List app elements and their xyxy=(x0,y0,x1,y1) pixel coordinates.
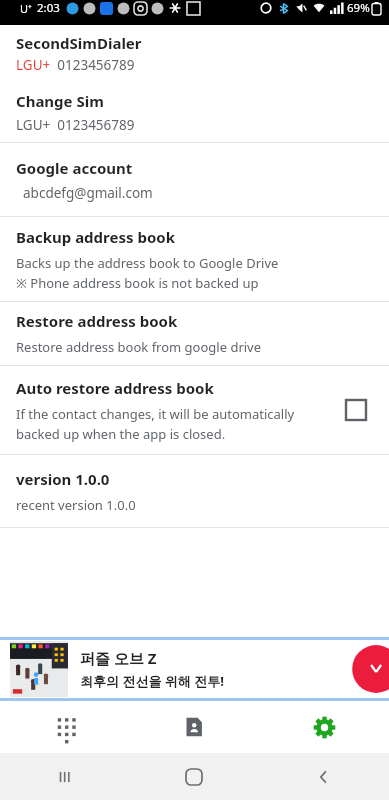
button[interactable]: Auto restore address book toggle xyxy=(339,393,373,427)
button[interactable]: Auto restore address book xyxy=(0,366,389,454)
staticText: LGU+ 0123456789 xyxy=(16,56,135,74)
staticText: backed up when the app is closed. xyxy=(16,425,226,443)
staticText: recent version 1.0.0 xyxy=(16,496,136,514)
button[interactable]: Contacts xyxy=(129,701,259,753)
staticText: 69% xyxy=(347,0,370,16)
button[interactable]: Home xyxy=(129,753,259,800)
button[interactable]: Back xyxy=(259,753,389,800)
button[interactable]: Change Sim xyxy=(0,82,389,142)
button[interactable]: Dialpad xyxy=(0,701,129,753)
button[interactable]: SecondSimDialer xyxy=(0,25,389,82)
button[interactable]: version 1.0.0 xyxy=(0,455,389,527)
staticText: 퍼즐 오브 Z xyxy=(80,648,157,668)
staticText: ※ Phone address book is not backed up xyxy=(16,274,259,292)
staticText: Restore address book xyxy=(16,311,178,331)
staticText: version 1.0.0 xyxy=(16,469,110,489)
staticText: 최후의 전선을 위해 전투! xyxy=(80,672,224,690)
staticText: Auto restore address book xyxy=(16,378,214,398)
staticText: 2:03 xyxy=(37,0,60,16)
staticText: Google account xyxy=(16,158,133,178)
staticText: SecondSimDialer xyxy=(16,33,142,53)
staticText: abcdefg@gmail.com xyxy=(16,184,153,202)
button[interactable]: Backup address book xyxy=(0,217,389,301)
button[interactable]: Recent apps xyxy=(0,753,129,800)
staticText: Restore address book from google drive xyxy=(16,338,262,356)
staticText: U⁺ xyxy=(20,1,32,16)
button[interactable]: Settings xyxy=(259,701,389,753)
staticText: Backup address book xyxy=(16,227,175,247)
button[interactable]: Restore address book xyxy=(0,302,389,365)
staticText: If the contact changes, it will be autom… xyxy=(16,405,295,423)
button[interactable]: Install xyxy=(343,646,389,692)
staticText: Backs up the address book to Google Driv… xyxy=(16,254,279,272)
button[interactable]: Google account xyxy=(0,143,389,216)
button[interactable]: Advertisement xyxy=(0,637,389,701)
staticText: Change Sim xyxy=(16,91,104,111)
staticText: LGU+ 0123456789 xyxy=(16,116,135,134)
